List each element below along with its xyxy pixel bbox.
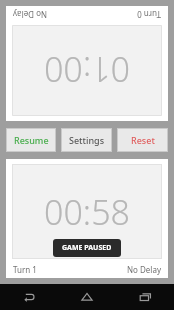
staticText: No Delay (127, 264, 161, 275)
button[interactable]: 00:58 (6, 159, 168, 278)
button[interactable]: Home (58, 284, 116, 310)
staticText: 00:58 (44, 189, 130, 235)
button[interactable]: Back (0, 284, 58, 310)
staticText: Reset (131, 134, 155, 146)
staticText: GAME PAUSED (62, 243, 112, 253)
button[interactable]: 01:00 (6, 6, 168, 121)
staticText: Turn 0 (137, 9, 161, 20)
button[interactable]: Recent apps (116, 284, 174, 310)
staticText: Settings (69, 134, 105, 146)
button[interactable]: Reset (117, 128, 168, 152)
staticText: Turn 1 (13, 264, 37, 275)
staticText: No Delay (13, 9, 47, 20)
button[interactable]: Resume (6, 128, 56, 152)
staticText: Resume (14, 134, 49, 146)
staticText: 01:00 (44, 47, 130, 93)
button[interactable]: Settings (61, 128, 112, 152)
